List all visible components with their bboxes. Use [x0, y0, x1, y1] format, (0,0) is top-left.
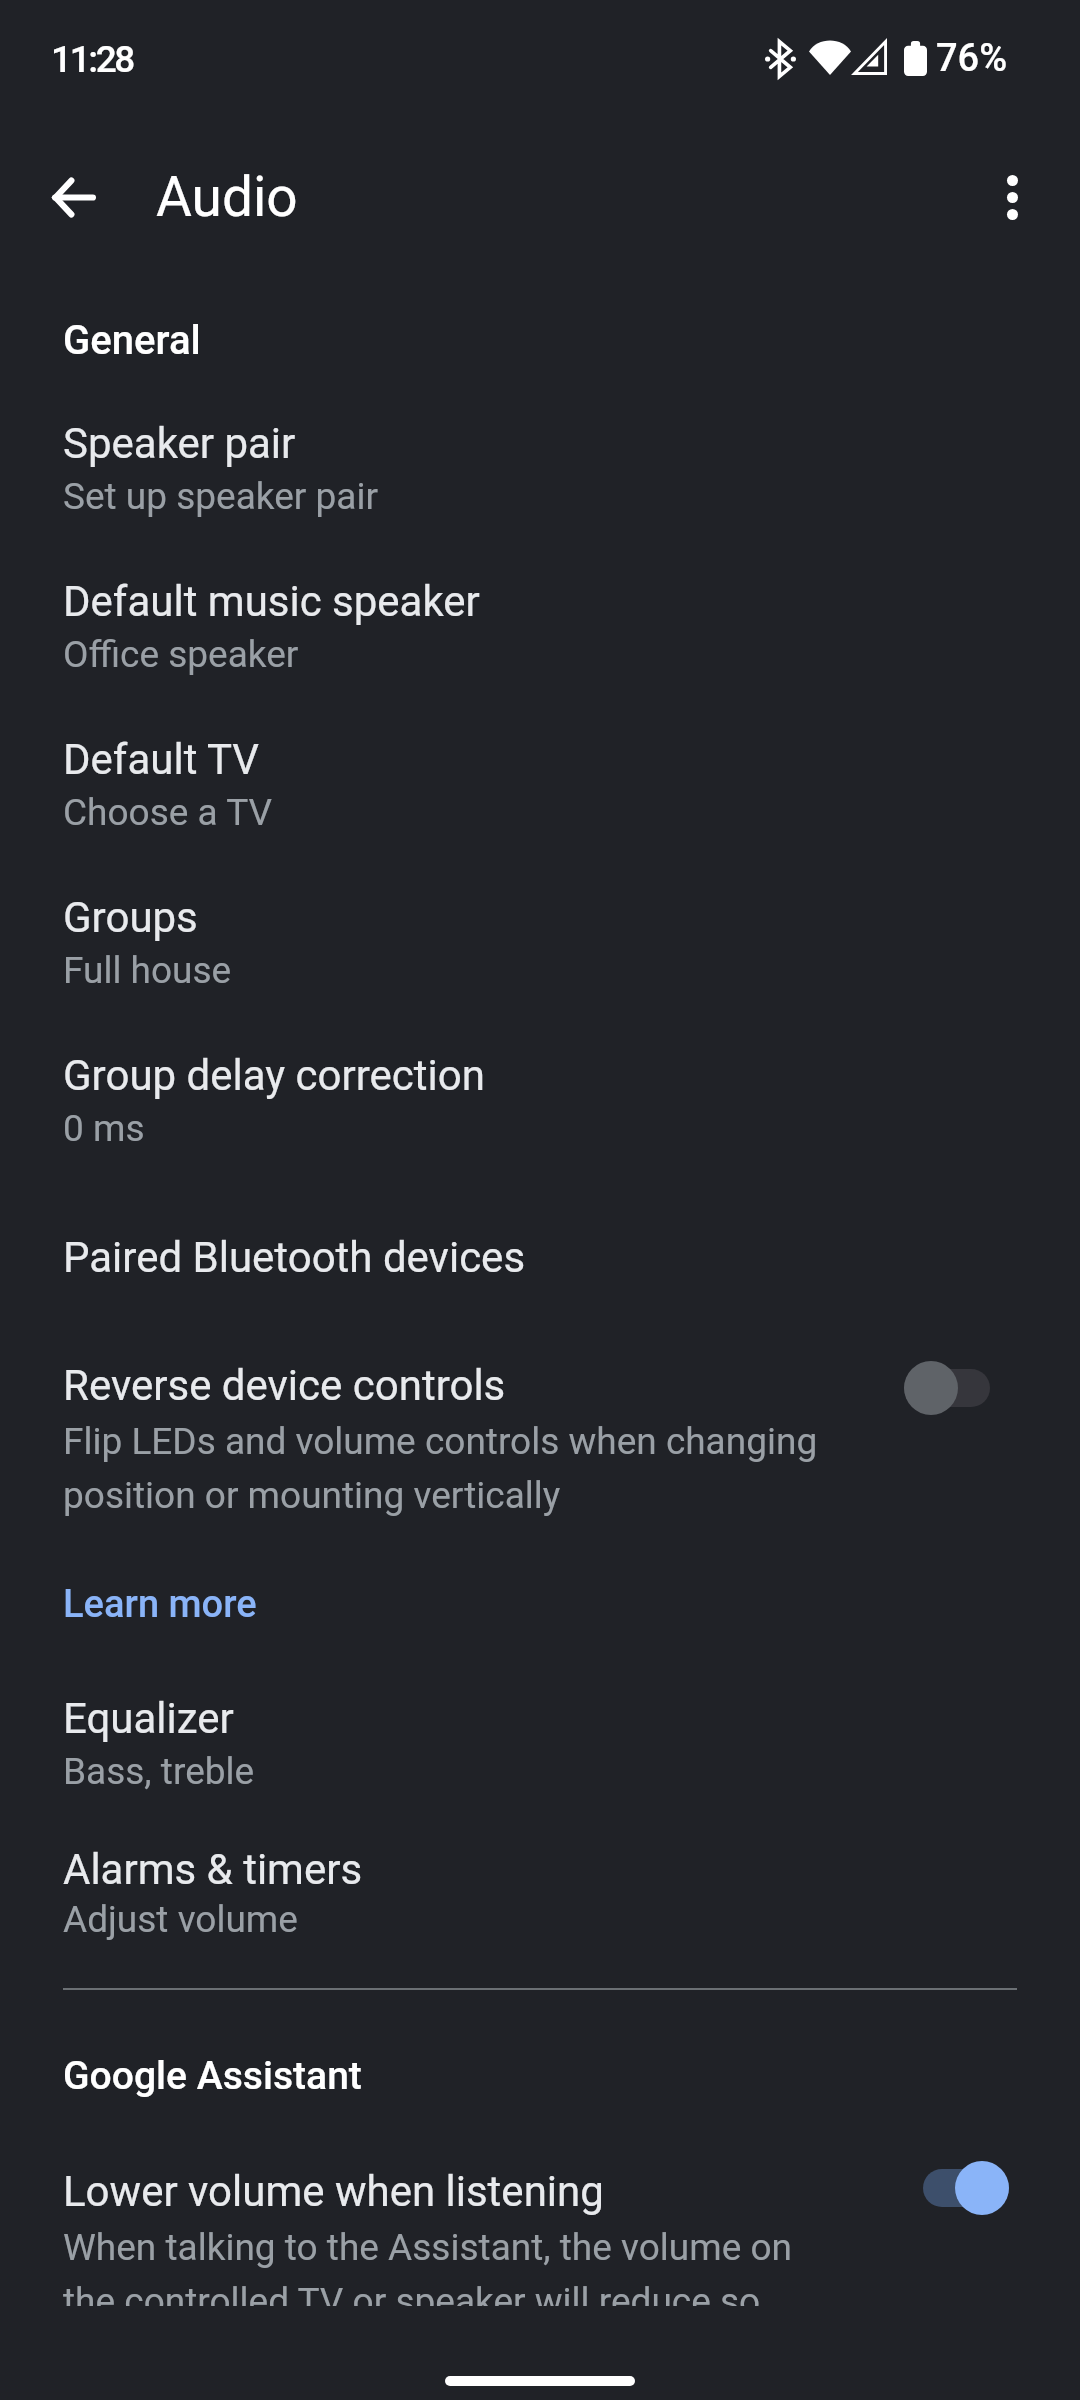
staticText: 76%: [936, 36, 1008, 81]
button[interactable]: Group delay correction: [0, 1014, 1080, 1172]
staticText: Alarms & timers: [63, 1845, 363, 1894]
staticText: 0 ms: [63, 1107, 145, 1150]
other: Bluetooth connected: [765, 40, 796, 78]
button[interactable]: More options: [967, 152, 1057, 242]
button[interactable]: Lower volume when listening: [0, 2128, 1080, 2306]
button[interactable]: Default music speaker: [0, 540, 1080, 698]
staticText: Office speaker: [63, 633, 299, 676]
staticText: Reverse device controls: [63, 1361, 506, 1410]
staticText: Learn more: [63, 1582, 257, 1627]
button[interactable]: Back: [29, 152, 119, 242]
button[interactable]: Default TV: [0, 698, 1080, 856]
other: Battery 76 percent: [904, 41, 927, 76]
staticText: Choose a TV: [63, 791, 273, 834]
staticText: Default music speaker: [63, 577, 480, 626]
other: Wi-Fi: [809, 40, 851, 75]
button[interactable]: Equalizer: [0, 1656, 1080, 1810]
staticText: Audio: [156, 165, 298, 229]
staticText: Lower volume when listening: [63, 2167, 604, 2216]
staticText: Group delay correction: [63, 1051, 485, 1100]
button[interactable]: Alarms & timers: [0, 1810, 1080, 1960]
staticText: Adjust volume: [63, 1898, 298, 1941]
staticText: the controlled TV or speaker will reduce…: [63, 2280, 761, 2306]
button[interactable]: Paired Bluetooth devices: [0, 1196, 1080, 1310]
button[interactable]: Toggle off: [904, 1361, 990, 1415]
button[interactable]: Toggle on: [923, 2161, 1009, 2215]
staticText: Flip LEDs and volume controls when chang…: [63, 1420, 818, 1463]
staticText: Equalizer: [63, 1694, 234, 1743]
staticText: Speaker pair: [63, 419, 296, 468]
staticText: When talking to the Assistant, the volum…: [63, 2226, 792, 2269]
staticText: 11:28: [51, 38, 133, 81]
staticText: Groups: [63, 893, 198, 942]
button[interactable]: Learn more: [0, 1556, 1080, 1640]
staticText: Default TV: [63, 735, 260, 784]
staticText: General: [63, 317, 201, 364]
staticText: Google Assistant: [63, 2053, 362, 2099]
staticText: Paired Bluetooth devices: [63, 1233, 526, 1282]
button[interactable]: Speaker pair: [0, 380, 1080, 540]
staticText: Set up speaker pair: [63, 475, 379, 518]
staticText: Full house: [63, 949, 232, 992]
other: Mobile signal: [853, 40, 887, 75]
button[interactable]: Reverse device controls: [0, 1322, 1080, 1525]
staticText: position or mounting vertically: [63, 1474, 561, 1517]
staticText: Bass, treble: [63, 1750, 255, 1793]
button[interactable]: Groups: [0, 856, 1080, 1014]
